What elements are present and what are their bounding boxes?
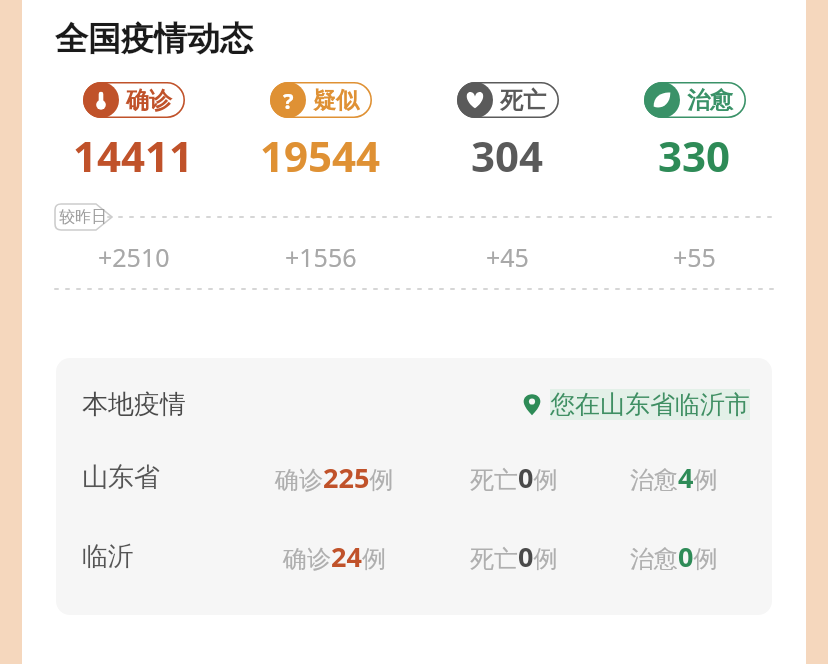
- staticText: 14411: [73, 127, 194, 184]
- staticText: 19544: [260, 127, 381, 184]
- staticText: +55: [673, 240, 716, 274]
- button[interactable]: 确诊: [40, 82, 227, 184]
- staticText: 确诊225例: [275, 459, 394, 496]
- staticText: 本地疫情: [82, 388, 186, 421]
- staticText: 死亡0例: [470, 459, 558, 496]
- staticText: 确诊24例: [283, 538, 386, 575]
- staticText: 死亡: [500, 86, 546, 115]
- staticText: +45: [486, 240, 529, 274]
- staticText: 全国疫情动态: [55, 18, 253, 60]
- staticText: +1556: [285, 240, 357, 274]
- staticText: 疑似: [313, 86, 359, 115]
- staticText: ?: [283, 85, 294, 115]
- button[interactable]: 治愈: [601, 82, 788, 184]
- staticText: 330: [658, 127, 731, 184]
- staticText: 治愈0例: [630, 538, 718, 575]
- staticText: 304: [471, 127, 544, 184]
- staticText: 临沂: [82, 540, 134, 573]
- other: Location: [521, 394, 543, 416]
- staticText: 您在山东省临沂市: [550, 389, 750, 420]
- staticText: 治愈: [687, 86, 733, 115]
- button[interactable]: ?: [227, 82, 414, 184]
- button[interactable]: Location: [521, 389, 750, 420]
- staticText: 死亡0例: [470, 538, 558, 575]
- staticText: 治愈4例: [630, 459, 718, 496]
- staticText: 确诊: [126, 86, 172, 115]
- staticText: +2510: [98, 240, 170, 274]
- staticText: 山东省: [82, 461, 160, 494]
- staticText: 较昨日: [59, 207, 107, 227]
- button[interactable]: 本地疫情: [56, 358, 772, 615]
- button[interactable]: 死亡: [414, 82, 601, 184]
